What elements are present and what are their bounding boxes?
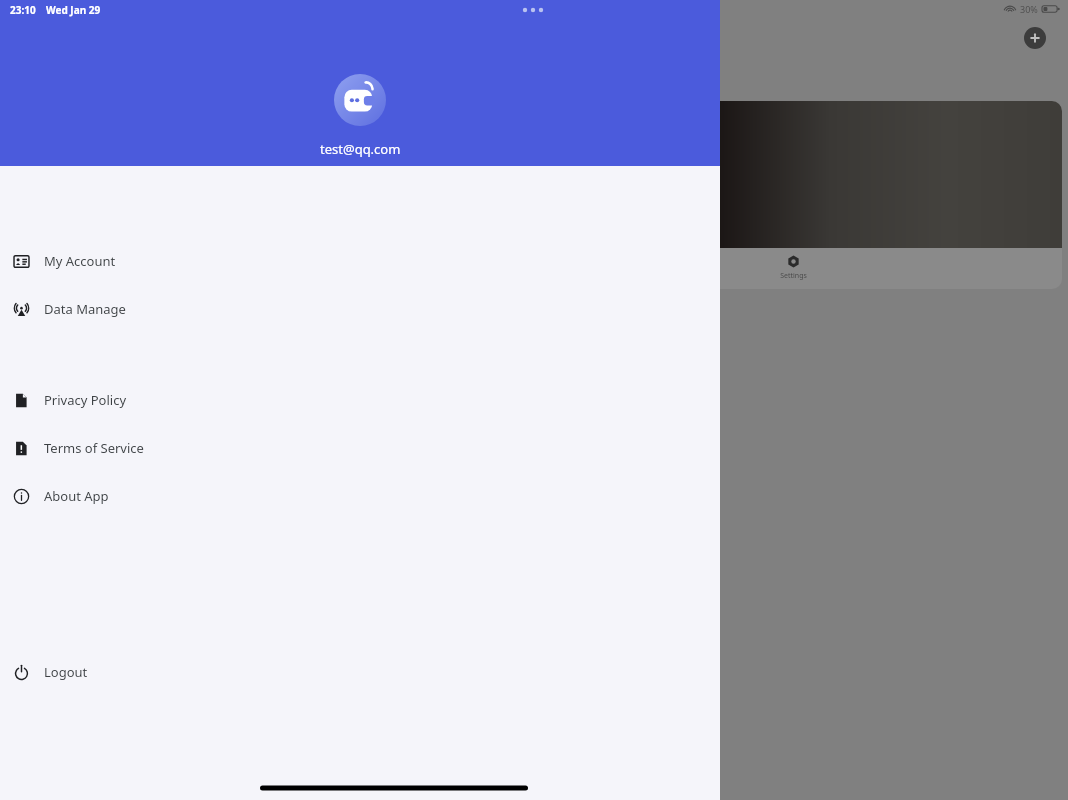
button[interactable]: Add <box>1024 27 1046 49</box>
button[interactable]: Profile avatar <box>334 74 386 126</box>
button[interactable]: Settings <box>780 255 807 281</box>
button[interactable]: Logout <box>0 655 720 689</box>
staticText: Wed Jan 29 <box>46 3 101 17</box>
button[interactable]: Settings <box>600 101 1062 289</box>
button[interactable]: Terms of Service <box>0 431 720 465</box>
staticText: 30% <box>1020 3 1038 15</box>
staticText: Privacy Policy <box>44 391 127 409</box>
button[interactable]: Privacy Policy <box>0 383 720 417</box>
staticText: test@qq.com <box>320 140 401 158</box>
staticText: Data Manage <box>44 300 126 318</box>
staticText: Settings <box>780 271 807 281</box>
staticText: My Account <box>44 252 116 270</box>
button[interactable]: Data Manage <box>0 292 720 326</box>
staticText: Terms of Service <box>44 439 144 457</box>
button[interactable]: About App <box>0 479 720 513</box>
button[interactable]: My Account <box>0 244 720 278</box>
staticText: Logout <box>44 663 88 681</box>
staticText: About App <box>44 487 109 505</box>
staticText: 23:10 <box>10 3 36 17</box>
